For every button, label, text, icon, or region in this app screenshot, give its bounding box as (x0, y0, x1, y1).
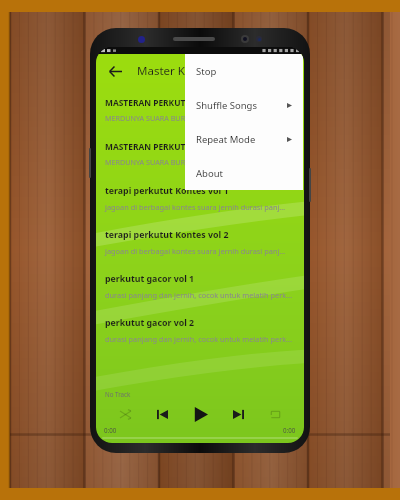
staticText: jagoan di berbagai kontes suara jernih d… (105, 246, 286, 256)
staticText: No Track (105, 390, 131, 398)
staticText: About (196, 167, 223, 180)
staticText: Master Kicau Perkutut (137, 63, 257, 79)
button[interactable]: Repeat Mode (185, 122, 303, 156)
staticText: perkutut gacor vol 1 (105, 273, 195, 285)
staticText: durasi panjang dan jernih, cocok untuk m… (105, 334, 293, 344)
button[interactable]: MASTERAN PERKUTUT LOKAL (96, 132, 304, 176)
staticText: perkutut gacor vol 2 (105, 317, 195, 329)
button[interactable]: Shuffle Songs (185, 88, 303, 122)
button[interactable]: About (185, 156, 303, 190)
staticText: terapi perkutut Kontes vol 1 (105, 185, 229, 197)
button[interactable]: terapi perkutut Kontes vol 1 (96, 176, 304, 220)
button[interactable]: terapi perkutut Kontes vol 2 (96, 220, 304, 264)
staticText: Repeat Mode (196, 133, 256, 146)
button[interactable]: MASTERAN PERKUTUT LOKAL (96, 88, 304, 132)
button[interactable]: perkutut gacor vol 2 (96, 308, 304, 352)
staticText: terapi perkutut Kontes vol 2 (105, 229, 229, 241)
staticText: MERDUNYA SUARA BURUNG PERKUTUT (105, 157, 239, 167)
staticText: Shuffle Songs (196, 99, 257, 112)
staticText: MASTERAN PERKUTUT LOKAL (105, 97, 226, 108)
button[interactable]: Previous (152, 404, 172, 424)
button[interactable]: Back (104, 60, 126, 82)
button[interactable]: perkutut gacor vol 1 (96, 264, 304, 308)
staticText: MASTERAN PERKUTUT LOKAL (105, 141, 226, 152)
staticText: 0:00 (104, 426, 117, 434)
button[interactable]: Stop (185, 54, 303, 88)
staticText: MERDUNYA SUARA BURUNG PERKUTUT (105, 113, 239, 123)
button[interactable]: Repeat (265, 404, 285, 424)
staticText: Stop (196, 65, 217, 78)
button[interactable]: Shuffle (115, 404, 135, 424)
button[interactable]: Next (228, 404, 248, 424)
staticText: durasi panjang dan jernih, cocok untuk m… (105, 290, 293, 300)
button[interactable]: Play (187, 402, 213, 426)
staticText: 0:00 (283, 426, 296, 434)
staticText: jagoan di berbagai kontes suara jernih d… (105, 202, 286, 212)
